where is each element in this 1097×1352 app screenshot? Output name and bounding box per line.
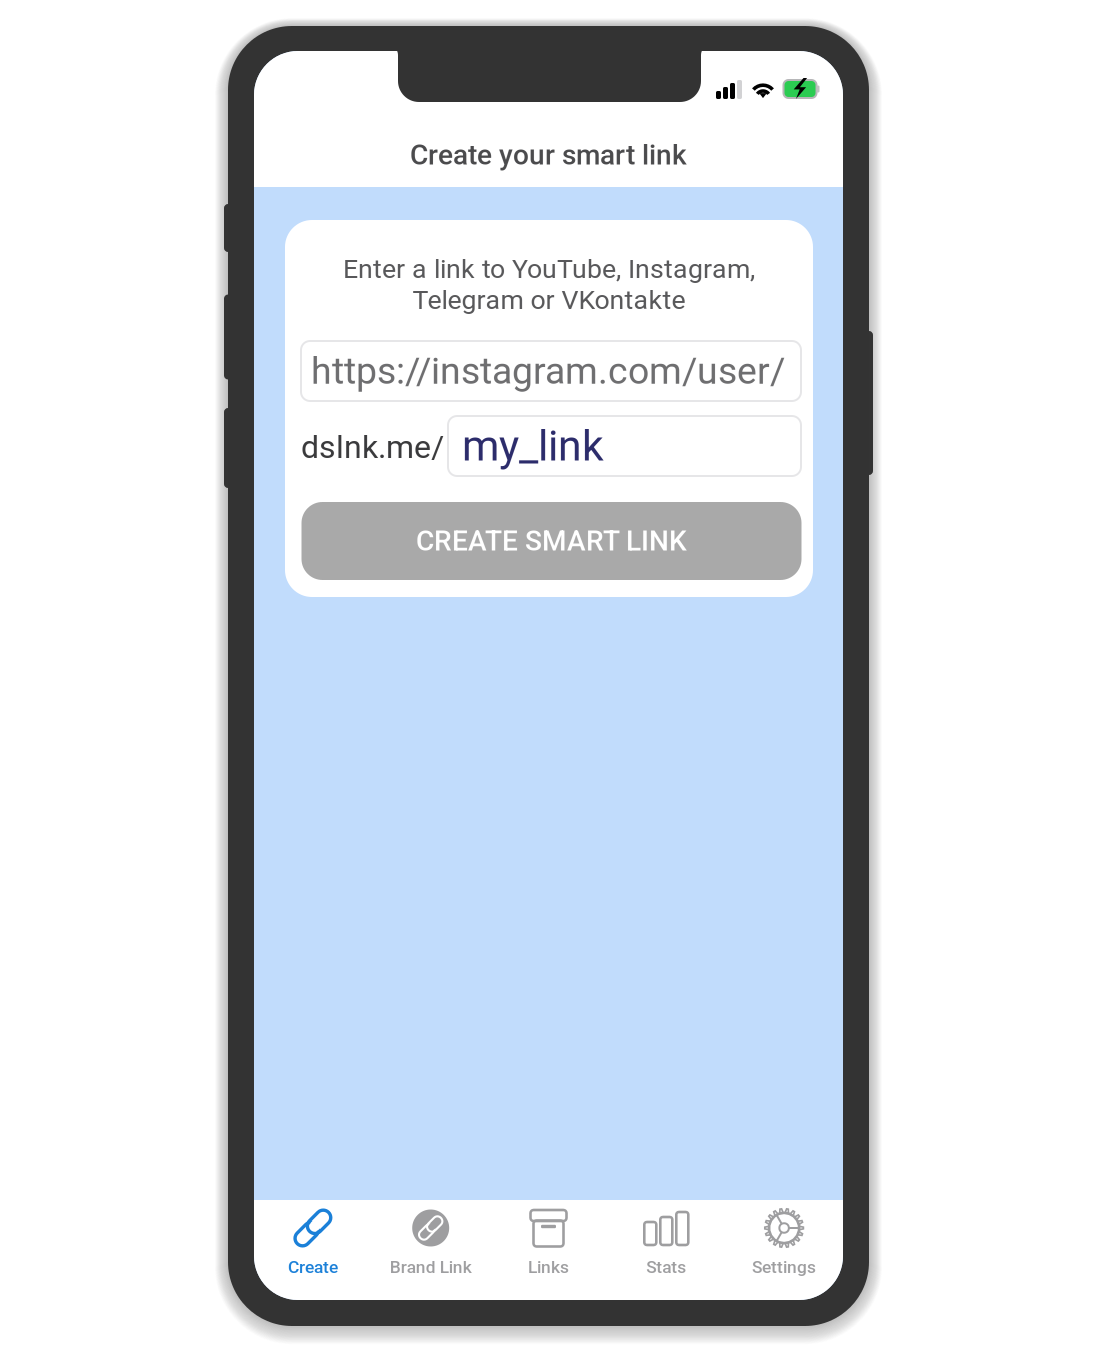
staticText: https://instagram.com/user/	[311, 349, 785, 393]
staticText: CREATE SMART LINK	[416, 525, 687, 557]
staticText: Telegram or VKontakte	[412, 284, 685, 316]
button[interactable]: my_link	[448, 416, 801, 476]
button[interactable]: Create	[254, 1200, 372, 1300]
staticText: Stats	[646, 1257, 686, 1277]
button[interactable]: https://instagram.com/user/	[301, 341, 801, 401]
staticText: Create your smart link	[410, 139, 687, 171]
button[interactable]: Settings	[725, 1200, 843, 1300]
button[interactable]: Brand Link	[372, 1200, 490, 1300]
staticText: Links	[528, 1257, 569, 1277]
button[interactable]: Stats	[607, 1200, 725, 1300]
staticText: dslnk.me/	[301, 428, 444, 466]
staticText: Create	[288, 1257, 338, 1277]
button[interactable]: Links	[490, 1200, 607, 1300]
staticText: Brand Link	[390, 1257, 472, 1277]
staticText: my_link	[462, 421, 604, 471]
staticText: Enter a link to YouTube, Instagram,	[343, 253, 755, 285]
button[interactable]: CREATE SMART LINK	[301, 502, 801, 580]
staticText: Settings	[752, 1257, 816, 1277]
